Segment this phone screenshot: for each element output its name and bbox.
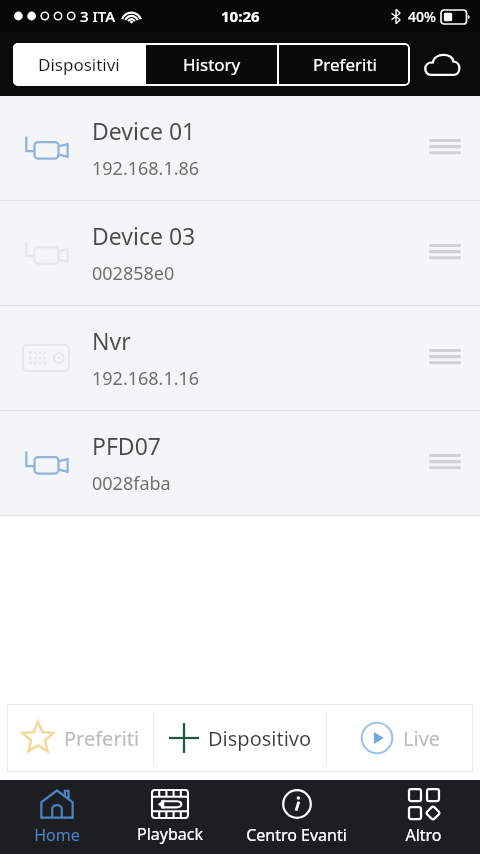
button[interactable]: Nvr <box>0 306 480 410</box>
button[interactable]: History <box>146 43 277 86</box>
staticText: Altro <box>405 824 442 846</box>
button[interactable]: Reorder <box>410 306 480 410</box>
button[interactable]: Centro Evanti <box>226 780 367 854</box>
button[interactable]: Reorder <box>410 201 480 305</box>
staticText: History <box>183 53 241 76</box>
staticText: 10:26 <box>221 6 260 26</box>
staticText: Nvr <box>92 325 131 356</box>
button[interactable]: Altro <box>367 780 480 854</box>
staticText: Preferiti <box>313 53 377 76</box>
staticText: 40% <box>408 7 436 26</box>
staticText: Device 03 <box>92 220 196 251</box>
staticText: 192.168.1.16 <box>92 366 200 391</box>
staticText: Device 01 <box>92 115 196 146</box>
staticText: 0028faba <box>92 471 171 496</box>
button[interactable]: Cloud <box>416 38 468 90</box>
staticText: PFD07 <box>92 430 161 461</box>
button[interactable]: Device 01 <box>0 96 480 200</box>
button[interactable]: Live <box>327 704 473 772</box>
button[interactable]: Device 03 <box>0 201 480 305</box>
staticText: 192.168.1.86 <box>92 156 200 181</box>
button[interactable]: Reorder <box>410 96 480 200</box>
staticText: Centro Evanti <box>246 824 347 846</box>
button[interactable]: Preferiti <box>7 704 153 772</box>
staticText: Live <box>403 725 441 752</box>
staticText: Preferiti <box>64 725 140 752</box>
button[interactable]: Preferiti <box>279 43 410 86</box>
button[interactable]: Home <box>0 780 113 854</box>
button[interactable]: Playback <box>113 780 226 854</box>
staticText: 3 ITA <box>80 6 115 26</box>
button[interactable]: PFD07 <box>0 411 480 515</box>
button[interactable]: Dispositivi <box>13 43 144 86</box>
staticText: 002858e0 <box>92 261 175 286</box>
staticText: Dispositivo <box>208 725 312 752</box>
staticText: Playback <box>137 823 203 845</box>
button[interactable]: Reorder <box>410 411 480 515</box>
staticText: Home <box>34 824 80 846</box>
button[interactable]: Dispositivo <box>154 704 326 772</box>
staticText: Dispositivi <box>38 53 120 76</box>
